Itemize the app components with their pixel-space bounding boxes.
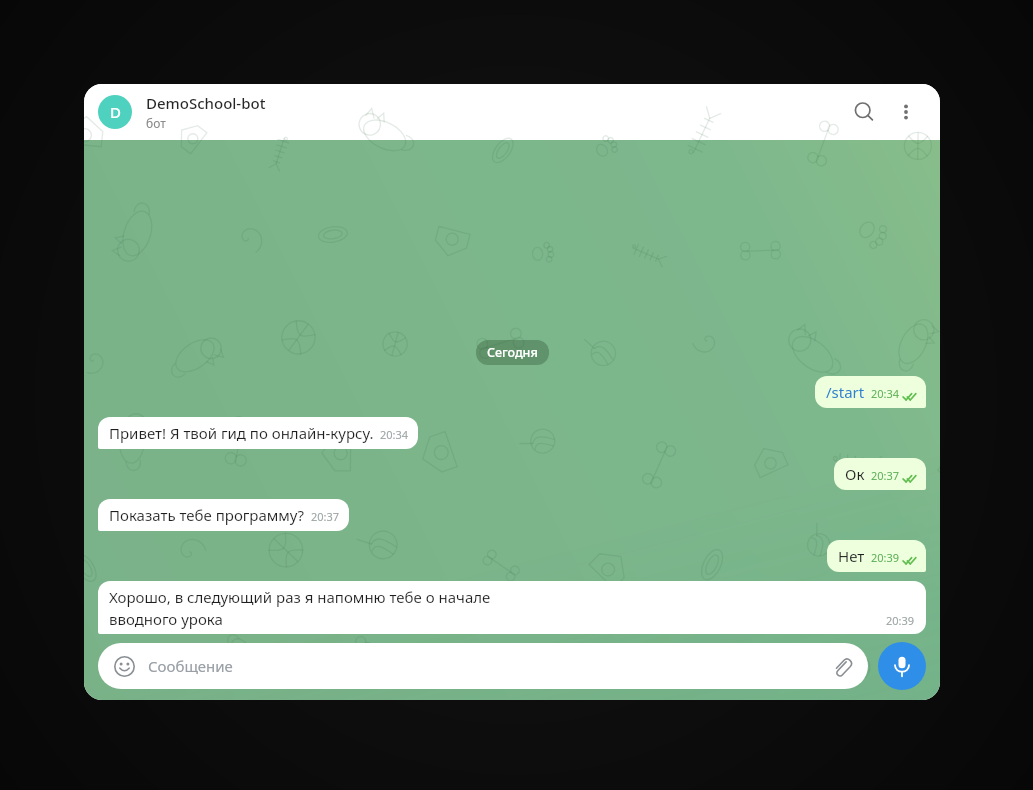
staticText: Нет <box>838 546 865 566</box>
staticText: бот <box>146 115 166 131</box>
button[interactable]: /start <box>815 376 926 408</box>
button[interactable]: D <box>98 95 132 129</box>
staticText: D <box>110 102 121 122</box>
staticText: Показать тебе программу? <box>109 505 305 525</box>
button[interactable]: DemoSchool-bot <box>146 93 842 131</box>
staticText: Привет! Я твой гид по онлайн-курсу. <box>109 423 374 443</box>
button[interactable]: Сегодня <box>487 344 538 361</box>
staticText: 20:37 <box>311 509 340 524</box>
button[interactable]: Emoji <box>112 654 136 678</box>
staticText: /start <box>826 382 865 402</box>
button[interactable]: Search <box>842 90 886 134</box>
staticText: вводного урока <box>109 609 223 629</box>
staticText: 20:37 <box>871 468 900 483</box>
button[interactable]: Хорошо, в следующий раз я напомню тебе о… <box>98 581 926 634</box>
button[interactable]: Ок <box>834 458 926 490</box>
button[interactable]: Emoji <box>98 643 868 689</box>
button[interactable]: More options <box>886 92 926 132</box>
staticText: Ок <box>845 464 865 484</box>
button[interactable]: Нет <box>827 540 926 572</box>
button[interactable]: Record voice message <box>878 642 926 690</box>
button[interactable]: Показать тебе программу? <box>98 499 349 531</box>
staticText: 20:39 <box>871 550 900 565</box>
staticText: DemoSchool-bot <box>146 93 266 113</box>
staticText: Хорошо, в следующий раз я напомню тебе о… <box>109 587 491 607</box>
staticText: 20:39 <box>886 613 915 628</box>
button[interactable]: Attach <box>828 653 854 679</box>
button[interactable]: Привет! Я твой гид по онлайн-курсу. <box>98 417 418 449</box>
staticText: Сегодня <box>487 344 538 361</box>
staticText: Сообщение <box>148 656 828 676</box>
staticText: 20:34 <box>871 386 900 401</box>
staticText: 20:34 <box>380 427 409 442</box>
